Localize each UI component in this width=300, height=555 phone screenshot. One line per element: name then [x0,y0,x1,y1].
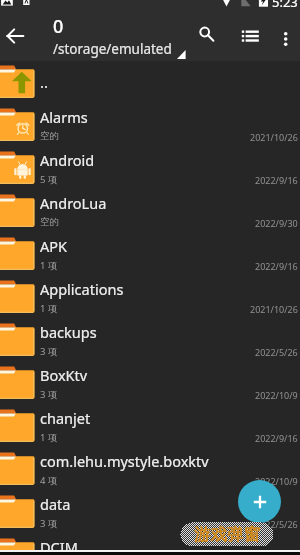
staticText: BoxKtv [40,365,88,385]
staticText: 2022/10/9 [255,475,298,487]
staticText: backups [40,322,97,342]
staticText: 2022/10/9 [255,389,298,401]
staticText: 4 项 [40,474,58,487]
button[interactable]: AndroLua [0,190,300,233]
staticText: Android [40,150,95,170]
staticText: 3 项 [40,517,58,530]
staticText: 0 [53,14,64,39]
staticText: 2022/9/30 [255,217,298,229]
staticText: .. [40,72,49,92]
staticText: com.lehu.mystyle.boxktv [40,451,209,471]
staticText: Applications [40,279,124,299]
staticText: 空的 [40,216,59,228]
staticText: 1 项 [40,259,58,272]
button[interactable]: BoxKtv [0,362,300,405]
button[interactable]: Add [238,480,281,523]
staticText: 5 项 [40,173,58,186]
button[interactable]: Back [0,19,32,53]
button[interactable]: backups [0,319,300,362]
staticText: APK [40,236,68,256]
button[interactable]: chanjet [0,405,300,448]
staticText: DCIM [40,537,78,555]
button[interactable]: APK [0,233,300,276]
staticText: 2022/9/16 [255,260,298,272]
staticText: 空的 [40,130,59,142]
button[interactable]: data [0,491,300,534]
button[interactable]: Alarms [0,104,300,147]
button[interactable]: More options [271,19,300,49]
staticText: Alarms [40,107,88,127]
button[interactable]: Applications [0,276,300,319]
button[interactable]: List view [230,16,266,52]
button[interactable]: DCIM [0,534,300,555]
staticText: chanjet [40,408,91,428]
staticText: 2021/10/26 [250,131,298,143]
staticText: 2022/9/16 [255,432,298,444]
button[interactable]: com.lehu.mystyle.boxktv [0,448,300,491]
staticText: /storage/emulated [53,40,172,58]
staticText: 2022/5/26 [255,346,298,358]
button[interactable]: Search [187,16,223,52]
staticText: 游戏弹窗 [194,524,260,545]
staticText: AndroLua [40,193,107,213]
staticText: 2022/9/16 [255,174,298,186]
staticText: 3 项 [40,345,58,358]
button[interactable]: .. [0,61,300,104]
button[interactable]: Android [0,147,300,190]
staticText: 1 项 [40,302,58,315]
staticText: 3 项 [40,388,58,401]
staticText: data [40,494,71,514]
staticText: 2021/10/26 [250,303,298,315]
staticText: 2022/5/26 [255,518,298,530]
staticText: 1 项 [40,431,58,444]
staticText: 5:23 [272,0,298,9]
